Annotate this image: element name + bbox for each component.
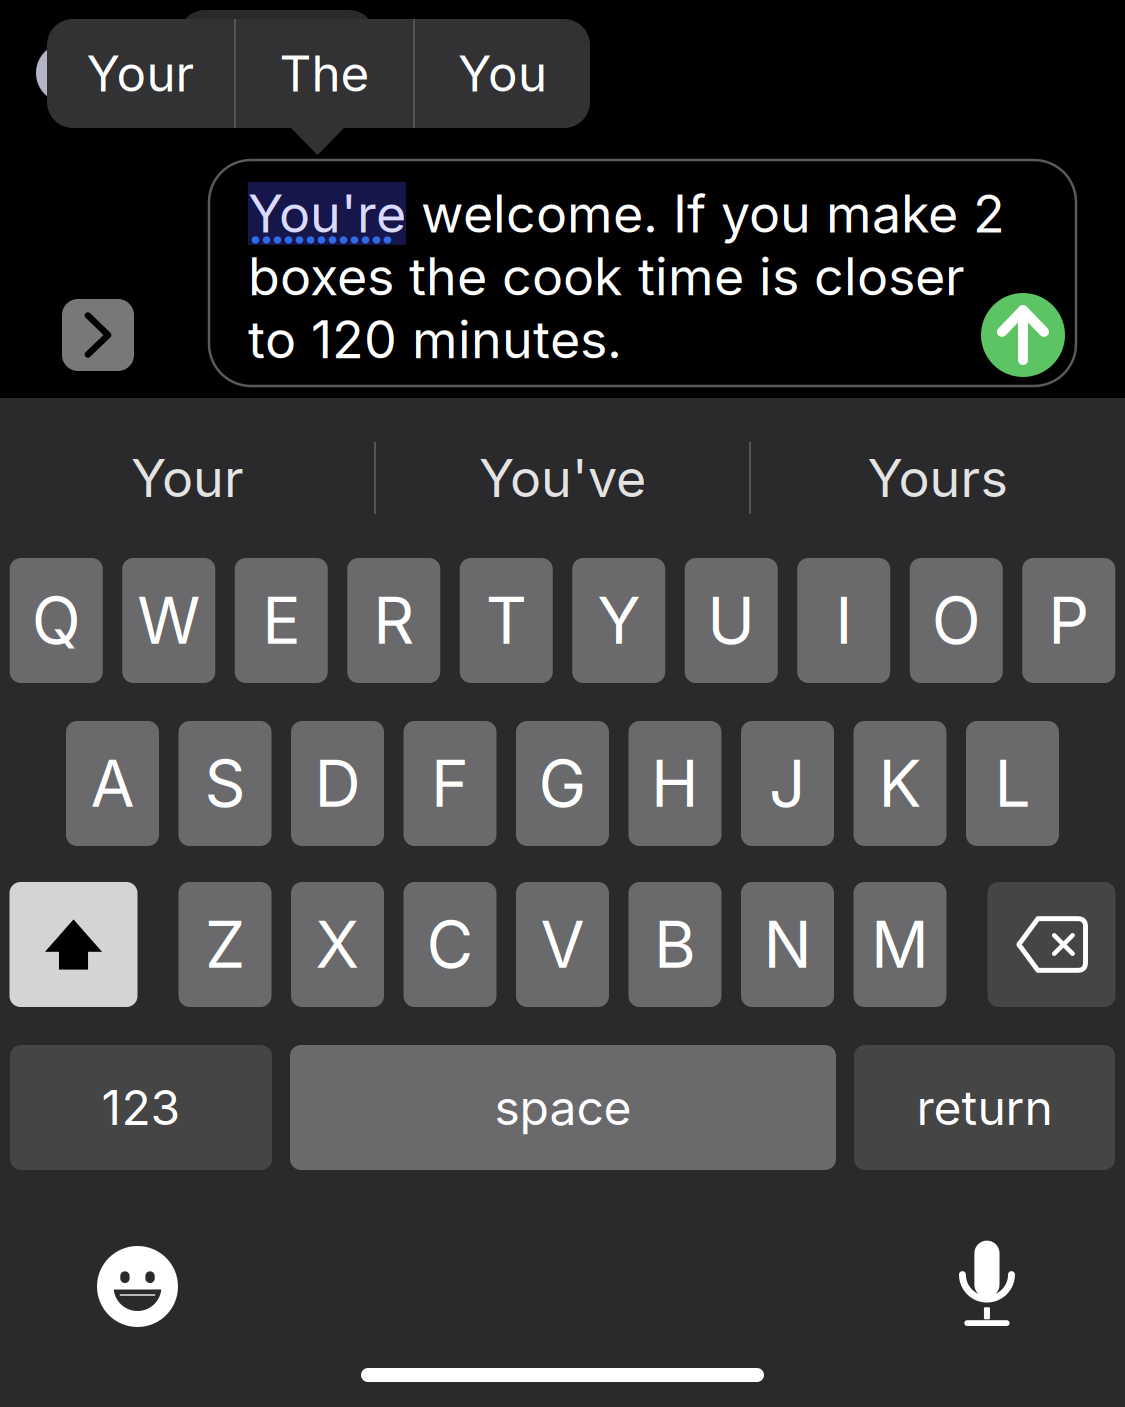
staticText: L	[994, 745, 1030, 822]
staticText: Yours	[867, 446, 1007, 509]
staticText: The	[279, 44, 369, 103]
staticText: W	[137, 582, 200, 659]
staticText: S	[204, 745, 245, 822]
staticText: X	[315, 906, 359, 983]
button[interactable]: E	[235, 558, 328, 683]
button[interactable]: C	[403, 882, 496, 1007]
button[interactable]: Send	[981, 293, 1065, 377]
staticText: H	[651, 745, 699, 822]
button[interactable]: Shift	[9, 882, 137, 1007]
staticText: Z	[205, 906, 245, 983]
button[interactable]: T	[460, 558, 553, 683]
button[interactable]: Yours	[751, 398, 1124, 558]
button[interactable]: L	[966, 721, 1059, 846]
button[interactable]: J	[741, 721, 834, 846]
button[interactable]: return	[854, 1045, 1115, 1170]
staticText: K	[878, 745, 921, 822]
staticText: F	[431, 745, 469, 822]
button[interactable]: Dictate	[959, 1226, 1015, 1312]
button[interactable]: Delete	[987, 882, 1115, 1007]
staticText: space	[494, 1078, 631, 1137]
staticText: Y	[597, 582, 640, 659]
button[interactable]: A	[66, 721, 159, 846]
button[interactable]: Your	[47, 19, 234, 128]
button[interactable]: Y	[572, 558, 665, 683]
staticText: N	[763, 906, 811, 983]
staticText: O	[932, 582, 981, 659]
button[interactable]: 123	[10, 1045, 272, 1170]
staticText: Your	[131, 446, 244, 509]
button[interactable]: W	[122, 558, 215, 683]
button[interactable]: M	[853, 882, 946, 1007]
button[interactable]: Z	[178, 882, 271, 1007]
button[interactable]: G	[516, 721, 609, 846]
staticText: 123	[101, 1078, 180, 1137]
button[interactable]: X	[291, 882, 384, 1007]
button[interactable]: P	[1022, 558, 1115, 683]
button[interactable]: Q	[10, 558, 103, 683]
staticText: You've	[479, 446, 646, 509]
staticText: P	[1048, 582, 1089, 659]
staticText: B	[654, 906, 696, 983]
button[interactable]: You	[415, 19, 590, 128]
staticText: A	[90, 745, 134, 822]
staticText: I	[835, 582, 852, 659]
staticText: return	[916, 1078, 1052, 1137]
staticText: Your	[86, 44, 194, 103]
button[interactable]: You've	[376, 398, 749, 558]
button[interactable]: D	[291, 721, 384, 846]
staticText: T	[486, 582, 527, 659]
staticText: Q	[32, 582, 81, 659]
staticText: You're welcome. If you make 2 boxes the …	[248, 182, 1005, 371]
button[interactable]: Show app drawer	[62, 299, 134, 371]
button[interactable]: O	[910, 558, 1003, 683]
staticText: C	[426, 906, 473, 983]
button[interactable]: K	[853, 721, 946, 846]
button[interactable]: The	[236, 19, 413, 128]
staticText: U	[707, 582, 755, 659]
staticText: M	[871, 906, 929, 983]
button[interactable]: B	[628, 882, 721, 1007]
button[interactable]: H	[628, 721, 721, 846]
button[interactable]: Emoji keyboard	[97, 1246, 178, 1327]
button[interactable]: S	[178, 721, 271, 846]
button[interactable]: F	[403, 721, 496, 846]
staticText: G	[538, 745, 586, 822]
button[interactable]: V	[516, 882, 609, 1007]
staticText: V	[540, 906, 584, 983]
staticText: You	[458, 44, 547, 103]
staticText: R	[373, 582, 414, 659]
button[interactable]: R	[347, 558, 440, 683]
button[interactable]: I	[797, 558, 890, 683]
staticText: E	[262, 582, 300, 659]
button[interactable]: Your	[1, 398, 374, 558]
button[interactable]: N	[741, 882, 834, 1007]
button[interactable]: space	[290, 1045, 836, 1170]
staticText: J	[769, 745, 806, 822]
button[interactable]: U	[685, 558, 778, 683]
staticText: D	[314, 745, 360, 822]
